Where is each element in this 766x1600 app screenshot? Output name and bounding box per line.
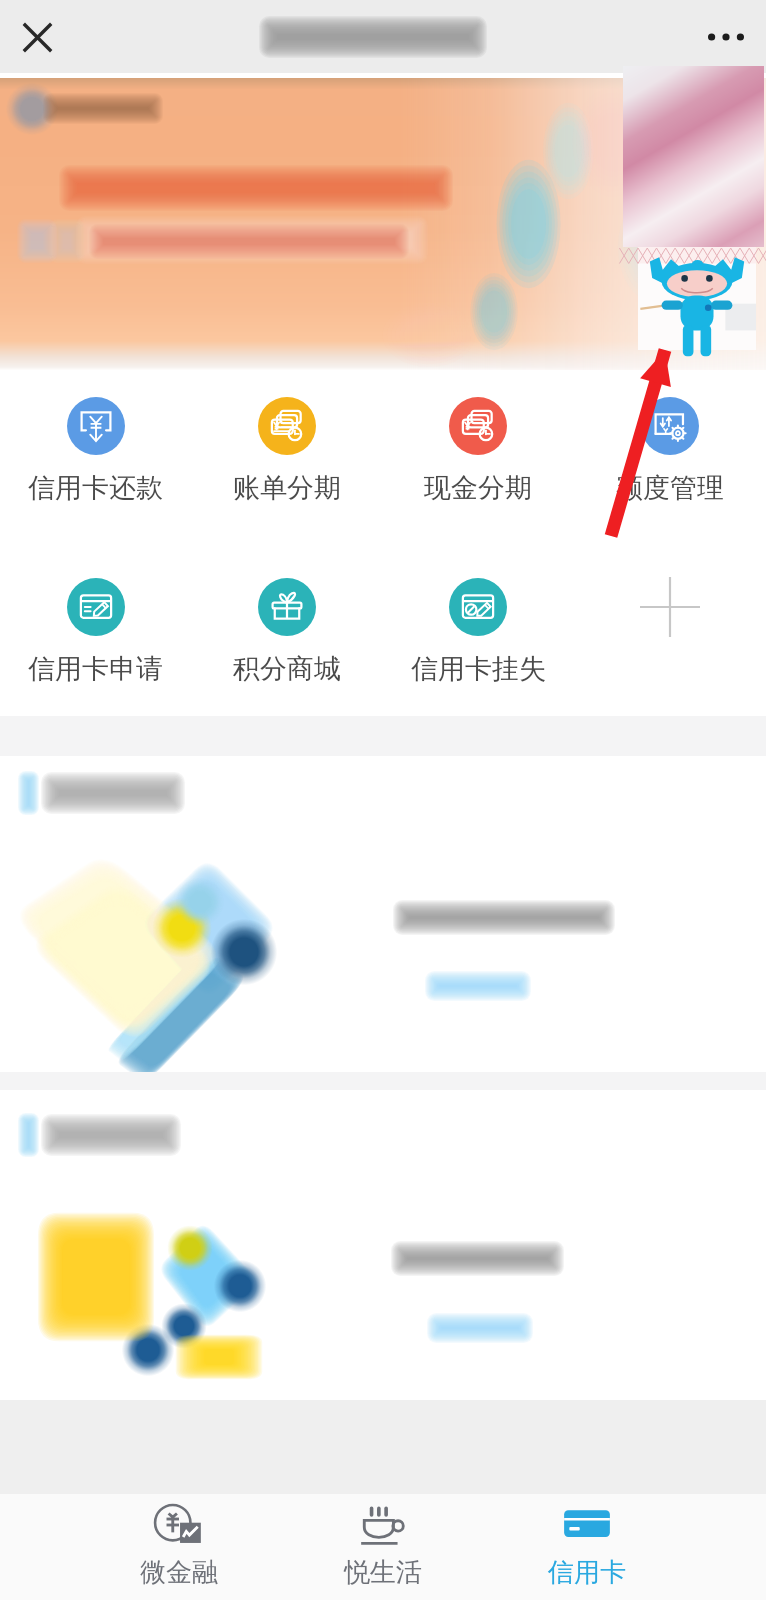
button[interactable]: 信用卡还款 bbox=[0, 397, 191, 505]
button[interactable]: 现金分期 bbox=[382, 397, 574, 505]
button[interactable]: 信用卡 bbox=[485, 1494, 689, 1600]
staticText: 账单分期 bbox=[233, 471, 341, 505]
staticText: 现金分期 bbox=[424, 471, 532, 505]
button[interactable]: Close bbox=[12, 12, 62, 62]
button[interactable] bbox=[429, 1315, 531, 1341]
button[interactable]: Add shortcut bbox=[574, 578, 766, 712]
button[interactable]: More options bbox=[704, 12, 748, 62]
staticText: 微金融 bbox=[140, 1556, 218, 1589]
button[interactable]: 信用卡挂失 bbox=[382, 578, 574, 686]
staticText: 积分商城 bbox=[233, 652, 341, 686]
button[interactable]: 账单分期 bbox=[191, 397, 382, 505]
button[interactable] bbox=[427, 973, 529, 999]
button[interactable]: 额度管理 bbox=[574, 397, 766, 505]
staticText: 额度管理 bbox=[616, 471, 724, 505]
staticText: 信用卡申请 bbox=[28, 652, 163, 686]
staticText: 悦生活 bbox=[344, 1556, 422, 1589]
staticText: 信用卡 bbox=[548, 1556, 626, 1589]
button[interactable]: 信用卡申请 bbox=[0, 578, 191, 686]
staticText: 信用卡还款 bbox=[28, 471, 163, 505]
button[interactable]: 积分商城 bbox=[191, 578, 382, 686]
button[interactable]: 悦生活 bbox=[281, 1494, 485, 1600]
button[interactable]: 微金融 bbox=[77, 1494, 281, 1600]
staticText: 信用卡挂失 bbox=[411, 652, 546, 686]
